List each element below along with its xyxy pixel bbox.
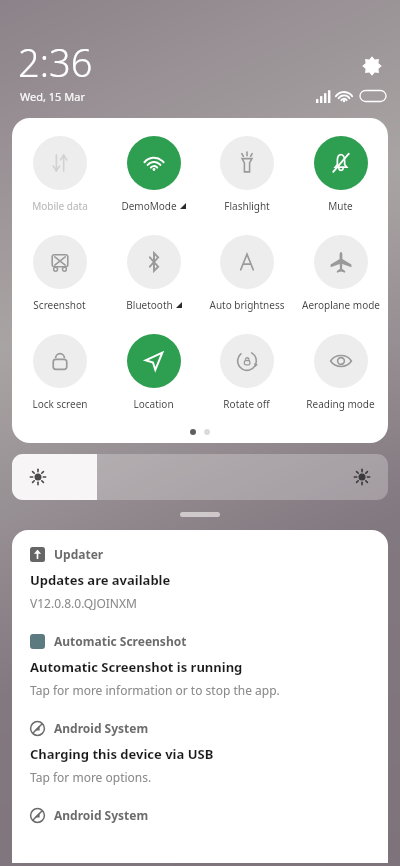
staticText: Mobile data <box>32 199 88 213</box>
staticText: Updates are available <box>30 571 171 589</box>
button[interactable]: Aeroplane mode <box>295 235 386 312</box>
button[interactable]: Reading mode <box>295 334 386 411</box>
button[interactable]: Mute <box>295 136 386 213</box>
button[interactable]: Rotate off <box>201 334 292 411</box>
staticText: Android System <box>54 807 149 823</box>
staticText: Tap for more information or to stop the … <box>30 682 280 698</box>
staticText: Location <box>133 397 174 411</box>
staticText: DemoMode <box>121 199 177 213</box>
button[interactable]: Android System <box>30 720 372 785</box>
button[interactable]: Automatic Screenshot <box>30 633 372 698</box>
button[interactable]: Flashlight <box>201 136 292 213</box>
staticText: Android System <box>54 720 149 736</box>
button[interactable]: Brightness <box>12 454 388 500</box>
staticText: Tap for more options. <box>30 769 152 785</box>
button[interactable]: Android System <box>30 807 372 823</box>
staticText: Screenshot <box>33 298 86 312</box>
staticText: Automatic Screenshot <box>54 633 187 649</box>
staticText: Auto brightness <box>209 298 285 312</box>
staticText: Charging this device via USB <box>30 745 214 763</box>
staticText: Rotate off <box>223 397 270 411</box>
staticText: Aeroplane mode <box>302 298 380 312</box>
button[interactable]: Screenshot <box>14 235 105 312</box>
button[interactable]: Lock screen <box>14 334 105 411</box>
button[interactable]: Updater <box>30 546 372 611</box>
staticText: Reading mode <box>306 397 375 411</box>
staticText: Wed, 15 Mar <box>20 89 85 104</box>
staticText: 2:36 <box>18 36 93 88</box>
button[interactable]: Location <box>108 334 199 411</box>
button[interactable]: Auto brightness <box>201 235 292 312</box>
staticText: Automatic Screenshot is running <box>30 658 243 676</box>
button[interactable]: Mobile data <box>14 136 105 213</box>
staticText: Mute <box>328 199 353 213</box>
button[interactable]: DemoMode <box>108 136 199 213</box>
staticText: V12.0.8.0.QJOINXM <box>30 595 137 611</box>
button[interactable]: Settings <box>356 50 388 82</box>
staticText: Flashlight <box>224 199 270 213</box>
staticText: Lock screen <box>32 397 88 411</box>
staticText: Updater <box>54 546 104 562</box>
staticText: Bluetooth <box>126 298 173 312</box>
button[interactable]: Bluetooth <box>108 235 199 312</box>
